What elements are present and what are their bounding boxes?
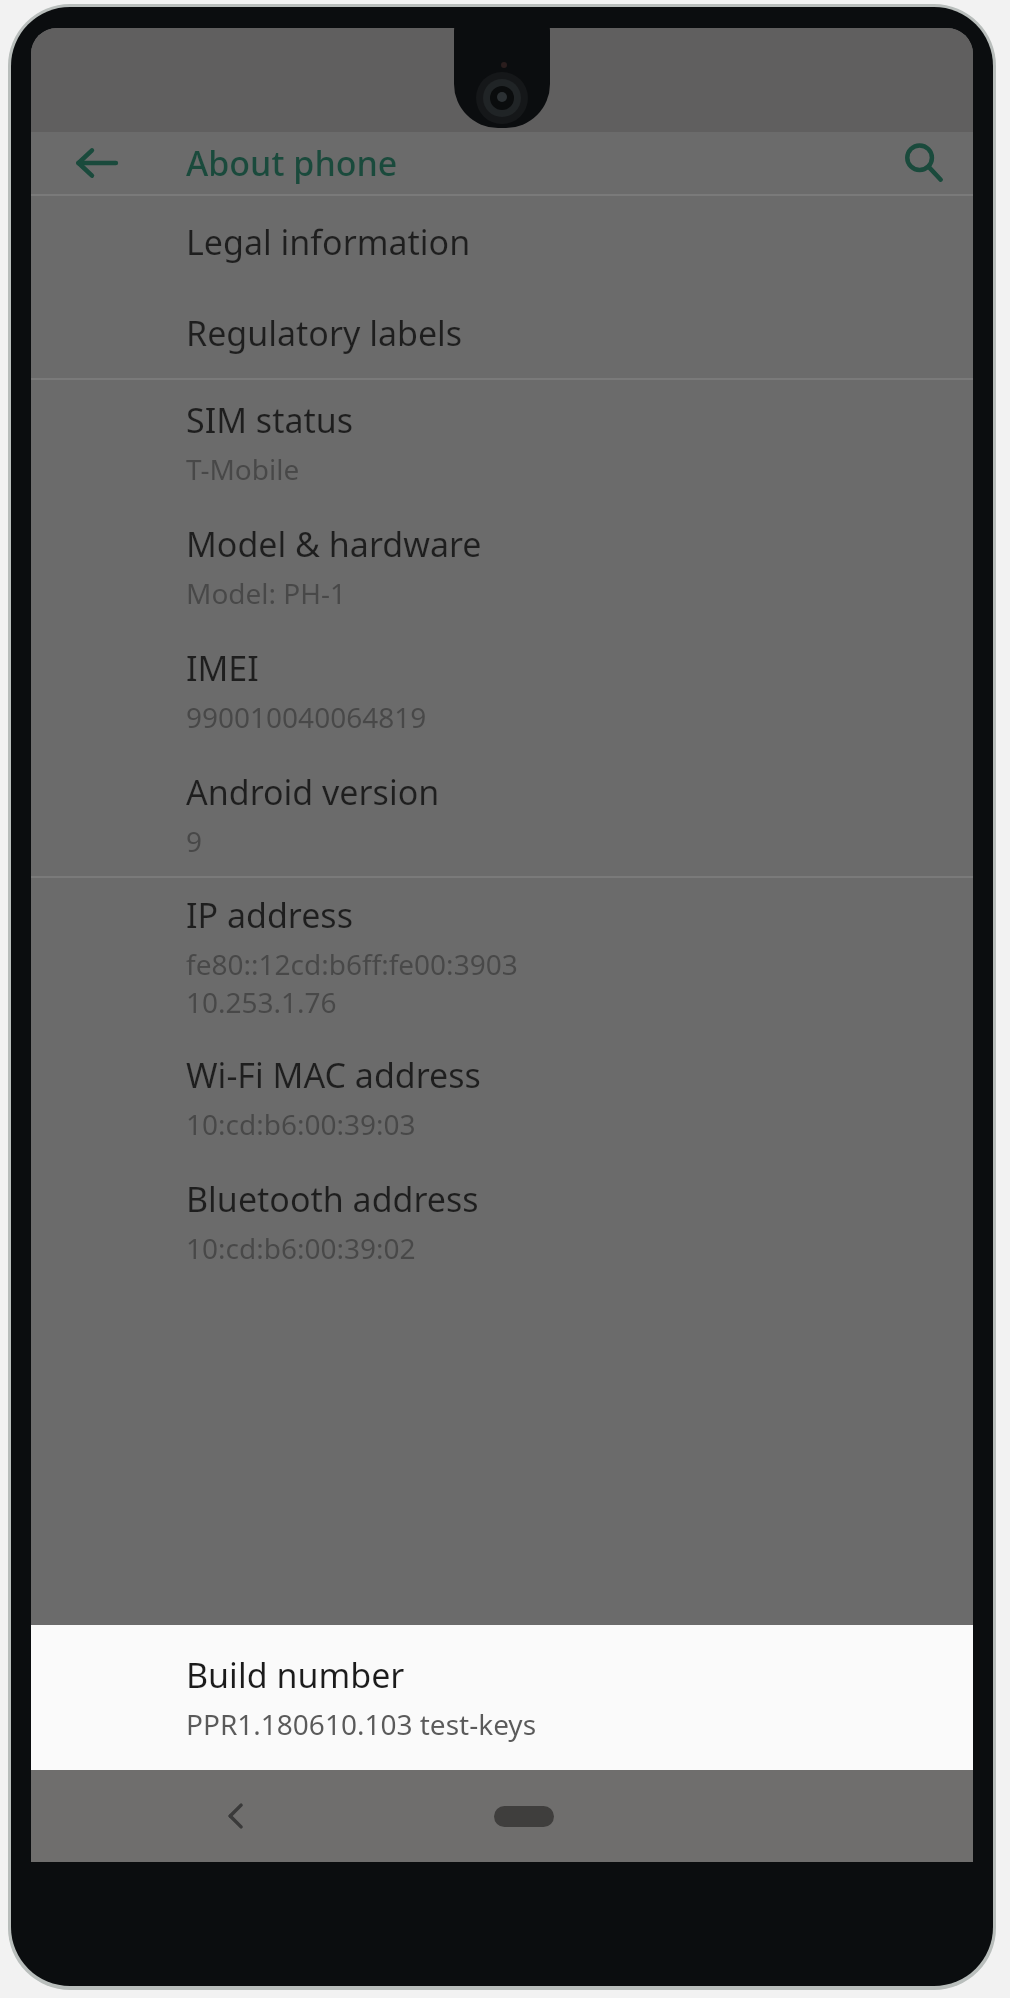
- staticText: 10:cd:b6:00:39:03: [186, 1105, 416, 1143]
- button[interactable]: Wi-Fi MAC address: [31, 1035, 973, 1159]
- staticText: Android version: [186, 769, 440, 815]
- staticText: Wi-Fi MAC address: [186, 1052, 481, 1098]
- staticText: Bluetooth address: [186, 1176, 479, 1222]
- staticText: 9: [186, 822, 203, 860]
- staticText: IP address: [186, 892, 353, 938]
- button[interactable]: Android version: [31, 752, 973, 876]
- staticText: Model & hardware: [186, 521, 482, 567]
- staticText: PPR1.180610.103 test-keys: [186, 1705, 537, 1743]
- button[interactable]: Build number: [31, 1625, 973, 1770]
- staticText: Build number: [186, 1652, 405, 1698]
- staticText: About phone: [186, 140, 398, 186]
- staticText: IMEI: [186, 645, 259, 691]
- staticText: Legal information: [186, 219, 471, 265]
- button[interactable]: SIM status: [31, 380, 973, 504]
- staticText: fe80::12cd:b6ff:fe00:3903 10.253.1.76: [186, 945, 518, 1021]
- button[interactable]: Home: [464, 1786, 584, 1846]
- staticText: T-Mobile: [186, 450, 300, 488]
- button[interactable]: IMEI: [31, 628, 973, 752]
- staticText: Regulatory labels: [186, 310, 463, 356]
- button[interactable]: Model & hardware: [31, 504, 973, 628]
- staticText: 10:cd:b6:00:39:02: [186, 1229, 416, 1267]
- button[interactable]: Search: [885, 132, 963, 194]
- button[interactable]: Legal information: [31, 196, 973, 287]
- button[interactable]: IP address: [31, 878, 973, 1035]
- button[interactable]: Bluetooth address: [31, 1159, 973, 1283]
- button[interactable]: Regulatory labels: [31, 287, 973, 378]
- staticText: 990010040064819: [186, 698, 427, 736]
- button[interactable]: Back: [59, 132, 135, 194]
- staticText: Model: PH-1: [186, 574, 347, 612]
- button[interactable]: Back: [191, 1770, 283, 1862]
- staticText: SIM status: [186, 397, 354, 443]
